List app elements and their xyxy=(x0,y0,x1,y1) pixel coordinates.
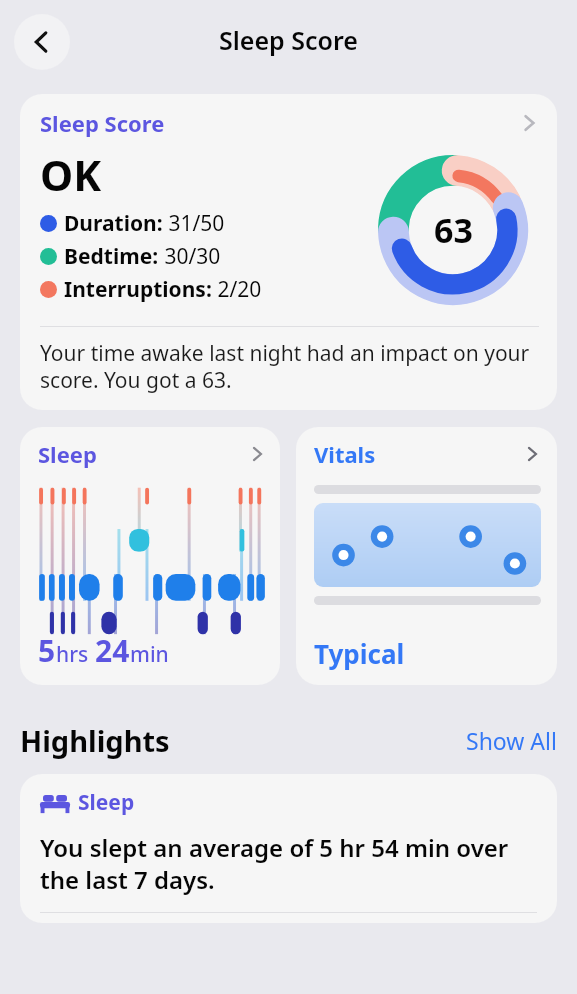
staticText: 24 xyxy=(95,630,130,671)
button[interactable]: Show All xyxy=(466,725,557,756)
staticText: 63 xyxy=(434,207,473,253)
staticText: min xyxy=(130,640,169,669)
staticText: 5 xyxy=(38,630,56,671)
button[interactable]: Sleep xyxy=(20,427,280,685)
staticText: Highlights xyxy=(20,721,170,760)
staticText: You slept an average of 5 hr 54 min over… xyxy=(40,831,537,896)
staticText: Your time awake last night had an impact… xyxy=(40,339,539,394)
staticText: 30/30 xyxy=(159,242,221,271)
staticText: Vitals xyxy=(314,439,376,469)
staticText: 31/50 xyxy=(163,209,225,238)
button[interactable]: Back xyxy=(14,14,70,70)
staticText: Sleep xyxy=(78,788,135,817)
staticText: Duration: xyxy=(64,209,163,238)
staticText: Sleep Score xyxy=(40,108,165,138)
staticText: Typical xyxy=(314,636,405,671)
staticText: 2/20 xyxy=(212,275,262,304)
button[interactable]: Sleep xyxy=(20,774,557,923)
staticText: Bedtime: xyxy=(64,242,159,271)
button[interactable]: Vitals xyxy=(296,427,557,685)
staticText: Interruptions: xyxy=(64,275,212,304)
staticText: OK xyxy=(40,146,102,203)
staticText: Sleep xyxy=(38,439,97,469)
staticText: hrs xyxy=(56,640,89,669)
button[interactable]: Sleep Score xyxy=(20,94,557,410)
staticText: Show All xyxy=(466,725,557,756)
staticText: Sleep Score xyxy=(219,23,358,57)
